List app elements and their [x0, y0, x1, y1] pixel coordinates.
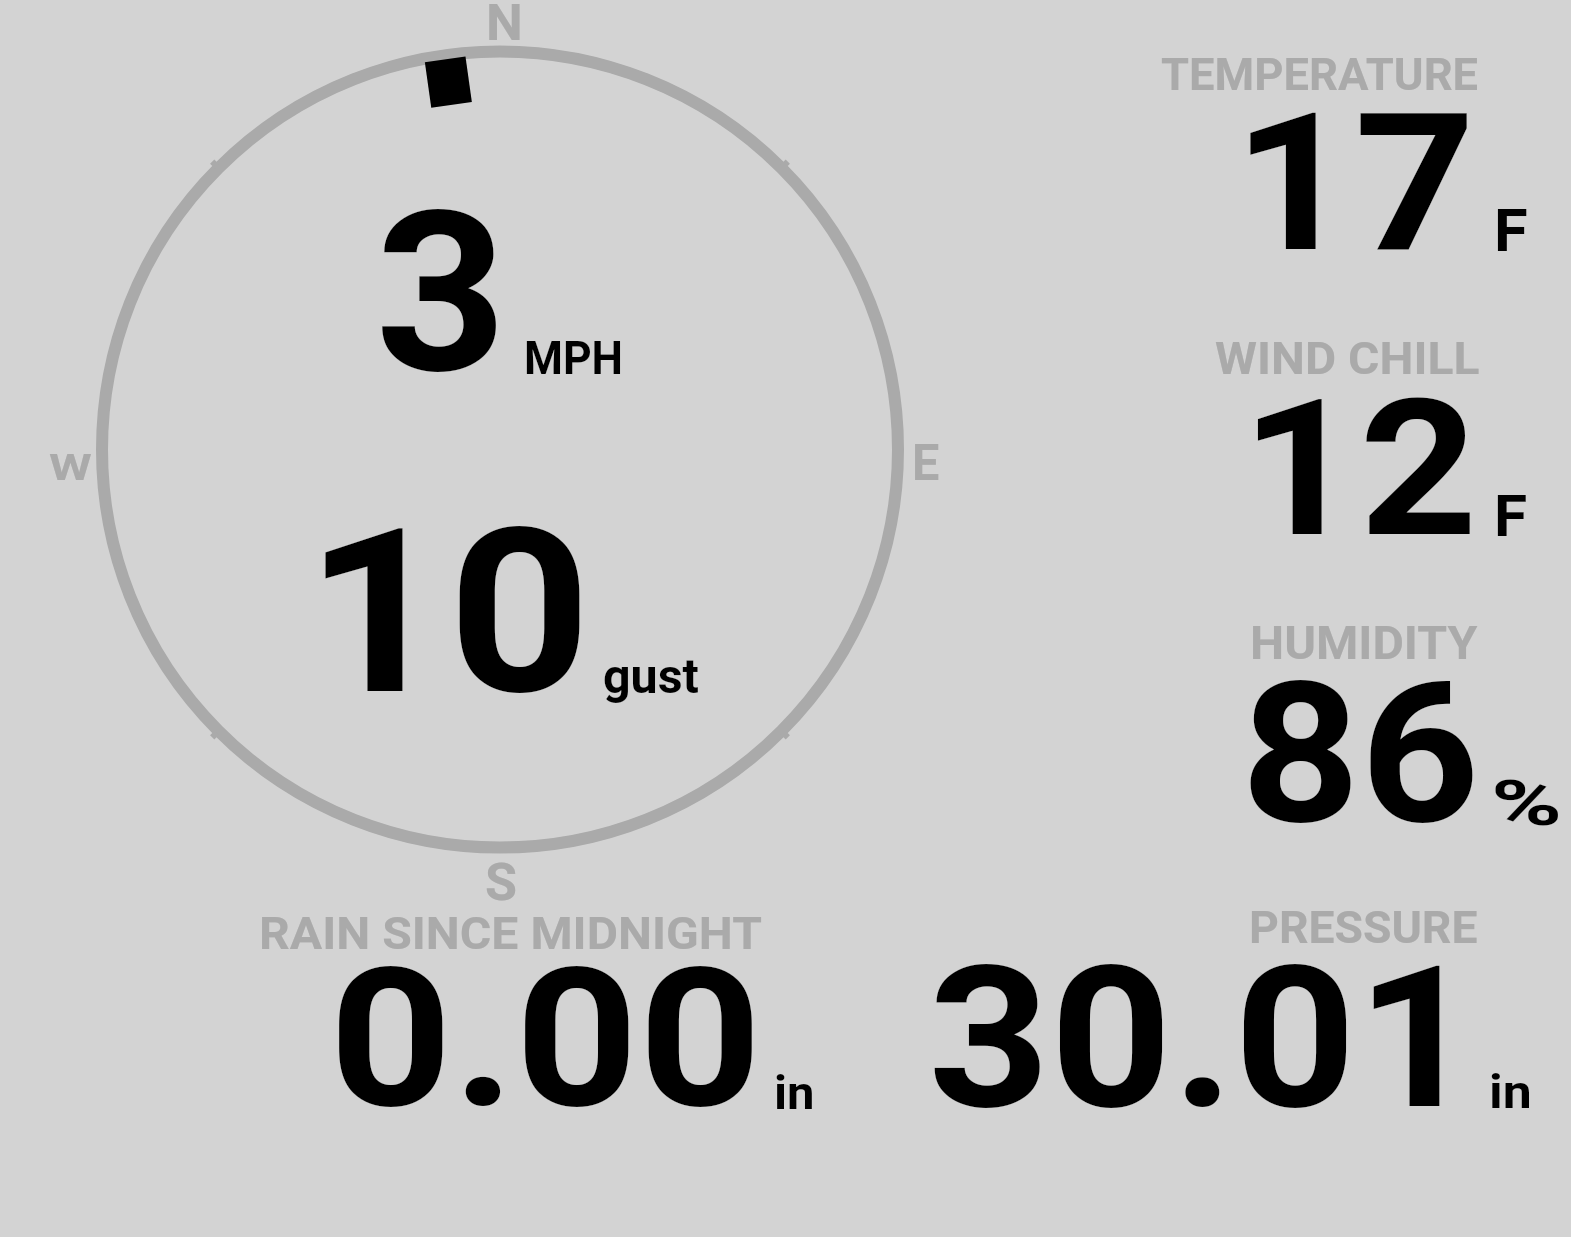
- staticText: WIND CHILL: [1215, 333, 1480, 385]
- button[interactable]: Temperature 17 degrees Fahrenheit: [1150, 45, 1550, 260]
- staticText: F: [1494, 196, 1528, 265]
- staticText: HUMIDITY: [1250, 617, 1478, 670]
- button[interactable]: Wind direction compass: [40, 0, 960, 900]
- staticText: gust: [603, 648, 699, 705]
- staticText: in: [1489, 1066, 1532, 1120]
- staticText: PRESSURE: [1249, 903, 1478, 954]
- staticText: in: [774, 1066, 815, 1120]
- staticText: 12: [1241, 359, 1478, 580]
- staticText: TEMPERATURE: [1161, 48, 1479, 101]
- staticText: RAIN SINCE MIDNIGHT: [259, 909, 762, 960]
- staticText: F: [1494, 482, 1527, 550]
- staticText: 86: [1241, 639, 1480, 868]
- staticText: E: [912, 433, 940, 492]
- staticText: 0.00: [329, 926, 762, 1152]
- staticText: %: [1491, 767, 1563, 840]
- button[interactable]: Humidity 86 percent: [1150, 615, 1560, 835]
- button[interactable]: Gust 10 miles per hour: [300, 470, 720, 710]
- button[interactable]: Wind chill 12 degrees Fahrenheit: [1150, 330, 1550, 545]
- staticText: MPH: [524, 332, 624, 385]
- staticText: S: [485, 852, 518, 913]
- button[interactable]: Wind speed 3 miles per hour: [300, 150, 660, 390]
- staticText: 10: [305, 479, 592, 747]
- staticText: 17: [1233, 72, 1476, 295]
- staticText: 30.01: [928, 924, 1479, 1154]
- staticText: W: [49, 445, 92, 489]
- staticText: N: [486, 0, 523, 52]
- button[interactable]: Rain since midnight 0.00 inches: [250, 900, 830, 1115]
- staticText: 3: [375, 164, 508, 424]
- button[interactable]: Pressure 30.01 inches: [920, 900, 1540, 1115]
